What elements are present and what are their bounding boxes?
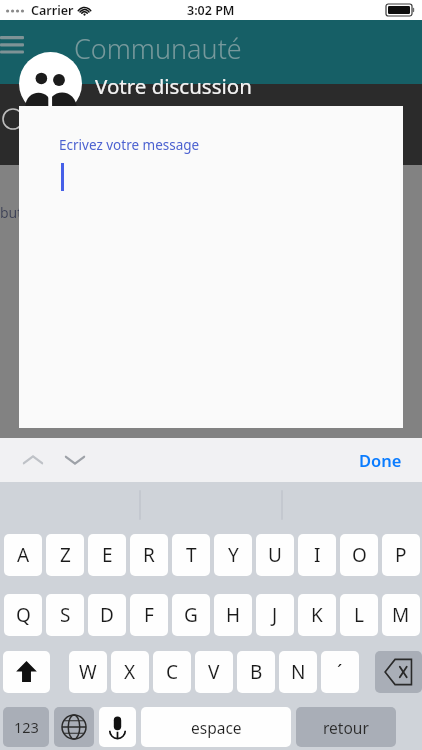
staticText: S <box>60 602 71 628</box>
staticText: but <box>0 203 23 222</box>
staticText: V <box>208 659 220 685</box>
staticText: J <box>272 602 278 628</box>
button[interactable]: D <box>88 594 126 636</box>
button[interactable]: Supprimer <box>375 651 422 693</box>
staticText: Done <box>359 449 402 471</box>
button[interactable]: P <box>382 534 420 576</box>
button[interactable]: R <box>130 534 168 576</box>
staticText: U <box>268 542 282 568</box>
button[interactable]: U <box>256 534 294 576</box>
staticText: retour <box>323 717 369 738</box>
button[interactable]: I <box>298 534 336 576</box>
button[interactable]: Changer de clavier <box>54 707 94 747</box>
staticText: H <box>226 602 241 628</box>
staticText: Z <box>60 542 71 568</box>
staticText: T <box>186 542 197 568</box>
button[interactable]: Champ suivant <box>62 451 88 469</box>
button[interactable]: Y <box>214 534 252 576</box>
button[interactable]: F <box>130 594 168 636</box>
staticText: C <box>166 659 179 685</box>
button[interactable]: K <box>298 594 336 636</box>
staticText: Carrier <box>31 2 74 19</box>
button[interactable]: 123 <box>3 707 49 747</box>
button[interactable]: N <box>279 651 317 693</box>
staticText: N <box>291 659 306 685</box>
staticText: Communauté <box>74 30 242 67</box>
button[interactable]: W <box>69 651 107 693</box>
staticText: Ecrivez votre message <box>59 136 200 154</box>
button[interactable]: T <box>172 534 210 576</box>
button[interactable]: C <box>153 651 191 693</box>
button[interactable]: Dictée <box>99 707 136 747</box>
button[interactable]: H <box>214 594 252 636</box>
button[interactable]: O <box>340 534 378 576</box>
button[interactable]: Menu <box>0 36 24 58</box>
staticText: D <box>100 602 114 628</box>
staticText: X <box>124 659 136 685</box>
staticText: R <box>143 542 155 568</box>
button[interactable]: Q <box>4 594 42 636</box>
button[interactable]: M <box>382 594 420 636</box>
button[interactable]: Done <box>351 443 410 477</box>
button[interactable]: retour <box>296 707 396 747</box>
staticText: Q <box>16 602 31 628</box>
button[interactable]: ´ <box>321 651 359 693</box>
staticText: I <box>314 542 321 568</box>
button[interactable]: V <box>195 651 233 693</box>
staticText: W <box>79 659 97 685</box>
button[interactable]: G <box>172 594 210 636</box>
staticText: K <box>311 602 323 628</box>
staticText: 123 <box>14 717 39 737</box>
button[interactable]: L <box>340 594 378 636</box>
staticText: A <box>17 542 30 568</box>
staticText: B <box>250 659 263 685</box>
button[interactable]: Ecrivez votre message <box>19 106 403 428</box>
staticText: O <box>352 542 367 568</box>
button[interactable]: S <box>46 594 84 636</box>
button[interactable]: X <box>111 651 149 693</box>
button[interactable]: Majuscule <box>3 651 50 693</box>
staticText: espace <box>191 717 242 738</box>
staticText: ´ <box>337 659 343 685</box>
button[interactable]: Z <box>46 534 84 576</box>
staticText: F <box>144 602 154 628</box>
button[interactable]: J <box>256 594 294 636</box>
staticText: M <box>392 602 410 628</box>
button[interactable]: espace <box>141 707 291 747</box>
button[interactable]: Champ précédent <box>20 451 46 469</box>
staticText: E <box>102 542 113 568</box>
button[interactable]: B <box>237 651 275 693</box>
staticText: G <box>184 602 198 628</box>
button[interactable]: E <box>88 534 126 576</box>
staticText: Votre discussion <box>95 72 252 100</box>
staticText: P <box>395 542 407 568</box>
button[interactable]: A <box>4 534 42 576</box>
staticText: L <box>354 602 364 628</box>
button[interactable]: Groupe <box>19 52 82 115</box>
staticText: Y <box>228 542 239 568</box>
staticText: 3:02 PM <box>187 2 235 19</box>
